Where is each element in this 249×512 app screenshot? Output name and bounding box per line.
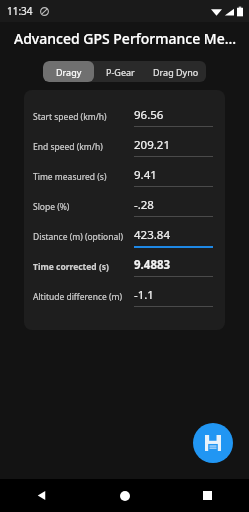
button[interactable]: Recents (166, 479, 249, 512)
staticText: Time measured (s) (33, 171, 107, 183)
staticText: Distance (m) (optional) (33, 231, 123, 243)
staticText: P-Gear (106, 66, 135, 78)
staticText: Advanced GPS Performance Mete… (14, 29, 239, 48)
button[interactable]: P-Gear (94, 61, 146, 82)
button[interactable]: Start speed (km/h) (33, 102, 213, 132)
staticText: 423.84 (134, 227, 170, 243)
button[interactable]: Save (193, 423, 233, 463)
staticText: 11:34 (7, 4, 33, 18)
button[interactable]: End speed (km/h) (33, 132, 213, 162)
button[interactable]: Slope (%) (33, 192, 213, 222)
staticText: Slope (%) (33, 201, 70, 213)
button[interactable]: Time measured (s) (33, 162, 213, 192)
staticText: Dragy (56, 66, 82, 78)
button[interactable]: Time corrected (s) (33, 252, 213, 282)
button[interactable]: Dragy (43, 61, 94, 82)
staticText: Drag Dyno (153, 66, 199, 78)
staticText: 209.21 (134, 137, 170, 153)
button[interactable]: Altitude difference (m) (33, 282, 213, 312)
staticText: Start speed (km/h) (33, 111, 107, 123)
staticText: 9.41 (134, 167, 157, 183)
staticText: 96.56 (134, 107, 164, 123)
button[interactable]: Drag Dyno (146, 61, 206, 82)
staticText: 9.4883 (134, 257, 171, 273)
staticText: Altitude difference (m) (33, 291, 123, 303)
button[interactable]: Back (0, 479, 83, 512)
button[interactable]: Distance (m) (optional) (33, 222, 213, 252)
staticText: -.28 (134, 197, 154, 213)
button[interactable]: Home (83, 479, 166, 512)
staticText: Time corrected (s) (33, 261, 109, 273)
staticText: End speed (km/h) (33, 141, 103, 153)
staticText: -1.1 (134, 287, 154, 303)
